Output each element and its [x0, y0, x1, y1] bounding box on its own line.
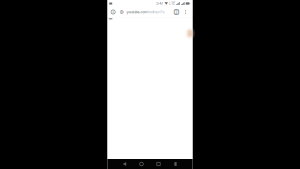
staticText: 5:47 — [156, 1, 163, 6]
button[interactable]: Recent apps — [150, 159, 167, 169]
staticText: youtube.com — [127, 10, 148, 14]
button[interactable]: Site information — [109, 7, 118, 17]
button[interactable]: Home — [133, 159, 150, 169]
staticText: 2 — [175, 9, 178, 15]
button[interactable]: Address bar, youtube.com/redirect — [118, 7, 171, 17]
button[interactable]: Switch tabs — [171, 7, 181, 17]
button[interactable]: Back — [116, 159, 133, 169]
staticText: /redirect?e — [148, 10, 165, 14]
button[interactable]: Menu — [167, 159, 184, 169]
button[interactable]: More options — [181, 7, 189, 17]
staticText: LTE — [169, 2, 175, 5]
